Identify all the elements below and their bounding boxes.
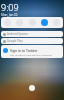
staticText: 9:09 [1,1,19,13]
button[interactable]: Quick setting 4 [41,19,48,26]
button[interactable]: Android System [1,31,63,37]
button[interactable]: Quick setting 5 [53,19,60,26]
button[interactable]: Sign in to Twitter [1,45,63,58]
staticText: Tap to sign in and see your timeline [10,53,52,56]
button[interactable]: Google Play [1,38,63,44]
button[interactable]: Quick setting 3 [29,19,36,26]
button[interactable]: Clear all notifications [29,85,35,91]
button[interactable]: Quick setting 1 [4,19,11,26]
button[interactable]: Quick setting 2 [16,19,23,26]
staticText: Mon, Jan 22 [1,13,18,17]
staticText: Android System [7,32,28,36]
staticText: Sign in to Twitter [10,48,38,53]
staticText: Google Play [7,39,23,43]
